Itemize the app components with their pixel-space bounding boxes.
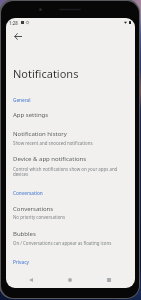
- staticText: Bubbles: [13, 230, 36, 238]
- staticText: No priority conversations: [13, 214, 66, 220]
- staticText: On / Conversations can appear as floatin…: [13, 240, 112, 246]
- staticText: Notifications: [13, 66, 79, 81]
- staticText: Conversations: [13, 205, 54, 213]
- staticText: App settings: [13, 111, 49, 119]
- staticText: Show recent and snoozed notifications: [13, 140, 93, 146]
- staticText: Notification history: [13, 130, 67, 138]
- staticText: Device & app notifications: [13, 155, 87, 163]
- staticText: Privacy: [13, 259, 30, 265]
- button[interactable]: Back: [24, 273, 38, 287]
- staticText: 1:28: [9, 20, 18, 26]
- button[interactable]: Recent apps: [102, 273, 116, 287]
- button[interactable]: Home: [63, 273, 77, 287]
- staticText: Control which notifications show on your…: [13, 166, 121, 177]
- staticText: Conversation: [13, 190, 43, 196]
- button[interactable]: Navigate up: [9, 28, 26, 45]
- staticText: General: [13, 97, 31, 103]
